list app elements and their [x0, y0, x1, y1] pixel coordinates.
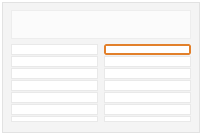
button[interactable]: Left row 4: [11, 80, 98, 91]
button[interactable]: Left row 7: [11, 116, 98, 122]
button[interactable]: Left row 3: [11, 68, 98, 79]
button[interactable]: Right row 2: [104, 56, 191, 67]
button[interactable]: Left row 1: [11, 44, 98, 55]
button[interactable]: Left row 5: [11, 92, 98, 103]
button[interactable]: Right row 6: [104, 104, 191, 115]
button[interactable]: Left row 2: [11, 56, 98, 67]
button[interactable]: Left row 6: [11, 104, 98, 115]
button[interactable]: Right row 3: [104, 68, 191, 79]
button[interactable]: Right row 7: [104, 116, 191, 122]
button[interactable]: Right row 1: [104, 44, 191, 55]
button[interactable]: Right row 5: [104, 92, 191, 103]
button[interactable]: Right row 4: [104, 80, 191, 91]
button[interactable]: Header panel: [11, 10, 191, 39]
